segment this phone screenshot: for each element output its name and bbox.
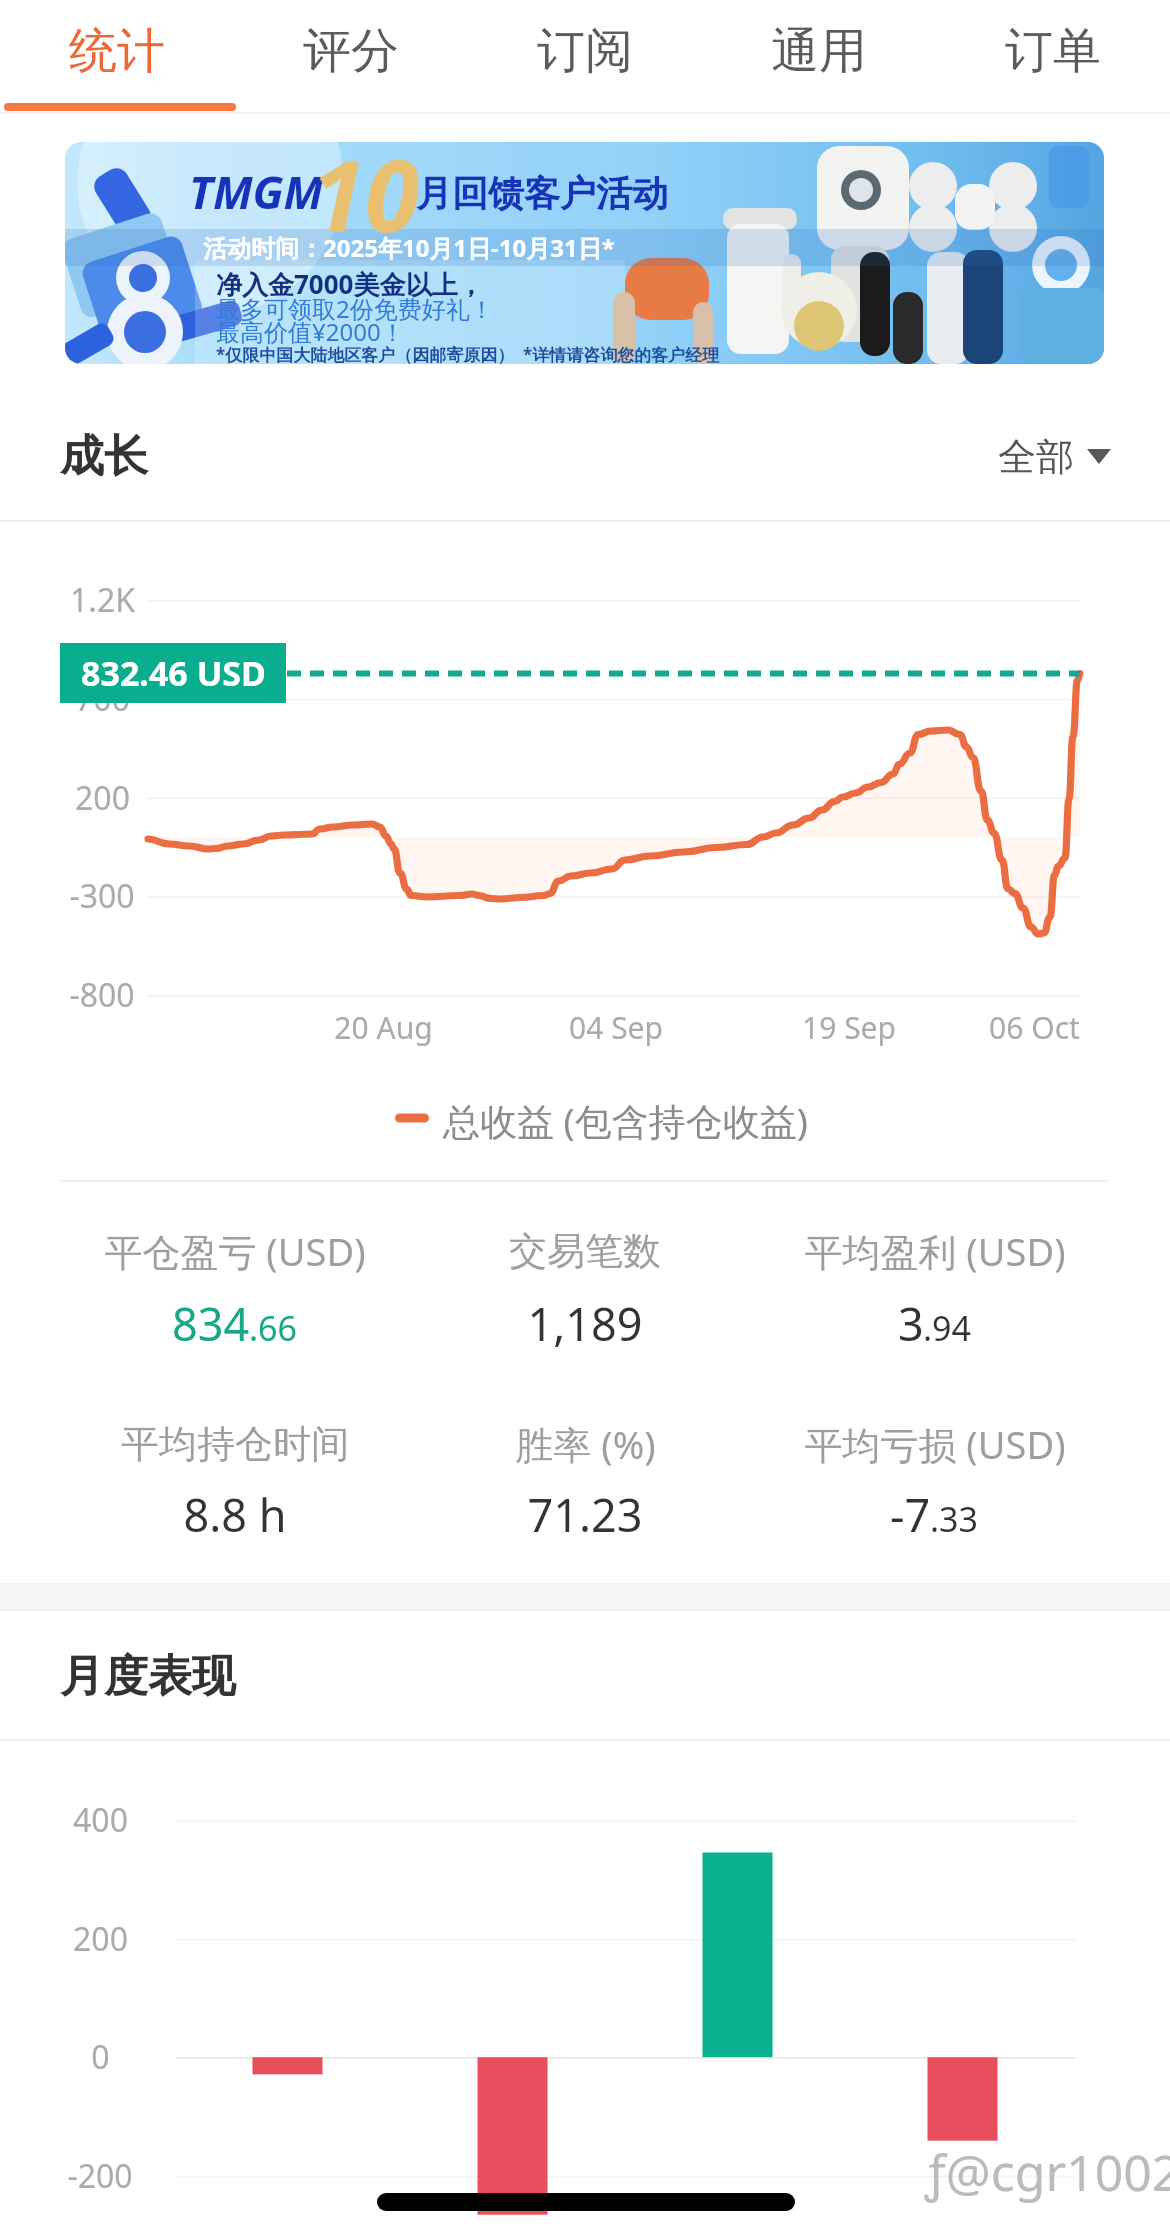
staticText: 统计 (69, 21, 165, 81)
staticText: 平均亏损 (USD) (804, 1418, 1066, 1470)
staticText: 400 (73, 1798, 128, 1842)
staticText: 10 (311, 127, 419, 247)
staticText: 8.8 h (183, 1484, 287, 1545)
staticText: 全部 (998, 433, 1074, 481)
staticText: 订单 (1005, 21, 1101, 81)
staticText: 月回馈客户活动 (416, 171, 668, 216)
button[interactable]: 订单 (936, 0, 1170, 112)
staticText: 通用 (771, 21, 867, 81)
button[interactable]: 成长 (0, 400, 620, 518)
staticText: 成长 (60, 429, 148, 484)
staticText: 200 (75, 776, 130, 820)
staticText: 平均持仓时间 (121, 1420, 349, 1468)
staticText: 胜率 (%) (515, 1418, 656, 1470)
staticText: 交易笔数 (509, 1227, 661, 1275)
staticText: 平均盈利 (USD) (804, 1225, 1066, 1277)
button[interactable]: 通用 (702, 0, 936, 112)
staticText: 最多可领取2份免费好礼！ (216, 292, 494, 325)
staticText: 06 Oct (989, 1007, 1080, 1048)
staticText: 订阅 (537, 21, 633, 81)
staticText: 3 (898, 1293, 924, 1354)
staticText: -300 (69, 874, 135, 918)
staticText: 834 (172, 1293, 250, 1354)
button[interactable]: Promotion banner (65, 142, 1104, 364)
staticText: 净入金7000美金以上， (216, 266, 484, 302)
staticText: 700 (75, 677, 130, 721)
button[interactable]: 统计 (0, 0, 234, 112)
staticText: -200 (67, 2154, 133, 2198)
button[interactable]: 全部 (984, 411, 1126, 501)
button[interactable]: 订阅 (468, 0, 702, 112)
staticText: 活动时间：2025年10月1日-10月31日* (203, 231, 615, 264)
staticText: 总收益 (包含持仓收益) (443, 1095, 808, 1146)
staticText: 最高价值¥2000！ (216, 315, 405, 348)
staticText: 1.2K (70, 578, 135, 622)
staticText: 19 Sep (802, 1007, 896, 1048)
staticText: -7 (890, 1484, 931, 1545)
staticText: 20 Aug (334, 1007, 433, 1048)
staticText: -800 (69, 973, 135, 1017)
staticText: .66 (249, 1305, 298, 1351)
staticText: .94 (923, 1305, 972, 1351)
staticText: 832.46 USD (81, 650, 266, 696)
staticText: *仅限中国大陆地区客户（因邮寄原因） *详情请咨询您的客户经理 (216, 343, 720, 366)
staticText: 04 Sep (569, 1007, 663, 1048)
staticText: .33 (930, 1496, 979, 1542)
staticText: 月度表现 (60, 1649, 236, 1704)
staticText: TMGM (189, 161, 324, 222)
button[interactable]: 评分 (234, 0, 468, 112)
staticText: 评分 (303, 21, 399, 81)
staticText: 平仓盈亏 (USD) (104, 1225, 366, 1277)
staticText: ƒ@cgr1002 (925, 2138, 1170, 2206)
staticText: 1,189 (527, 1293, 643, 1354)
staticText: 200 (73, 1917, 128, 1961)
staticText: 71.23 (527, 1484, 643, 1545)
staticText: 0 (91, 2035, 110, 2079)
